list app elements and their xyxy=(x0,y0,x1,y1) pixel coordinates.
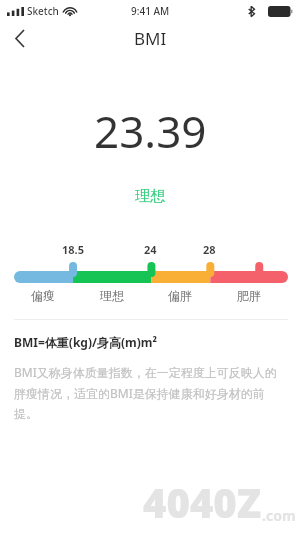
staticText: 24 xyxy=(144,242,157,257)
staticText: BMI又称身体质量指数，在一定程度上可反映人的胖瘦情况，适宜的BMI是保持健康和… xyxy=(14,364,286,421)
staticText: 9:41 AM xyxy=(131,4,170,18)
staticText: Sketch xyxy=(27,4,59,18)
staticText: BMI=体重(kg)/身高(m)m² xyxy=(14,334,158,350)
button[interactable]: Back xyxy=(0,22,40,55)
staticText: 23.39 xyxy=(94,101,207,161)
staticText: 肥胖 xyxy=(237,288,261,303)
staticText: 28 xyxy=(203,242,216,257)
staticText: 18.5 xyxy=(62,242,84,257)
staticText: 理想 xyxy=(100,288,124,303)
staticText: .com xyxy=(262,506,296,525)
staticText: 偏瘦 xyxy=(31,288,55,303)
staticText: 理想 xyxy=(135,187,165,206)
staticText: BMI xyxy=(134,27,167,50)
staticText: 偏胖 xyxy=(168,288,192,303)
staticText: 4040Z xyxy=(143,475,262,529)
